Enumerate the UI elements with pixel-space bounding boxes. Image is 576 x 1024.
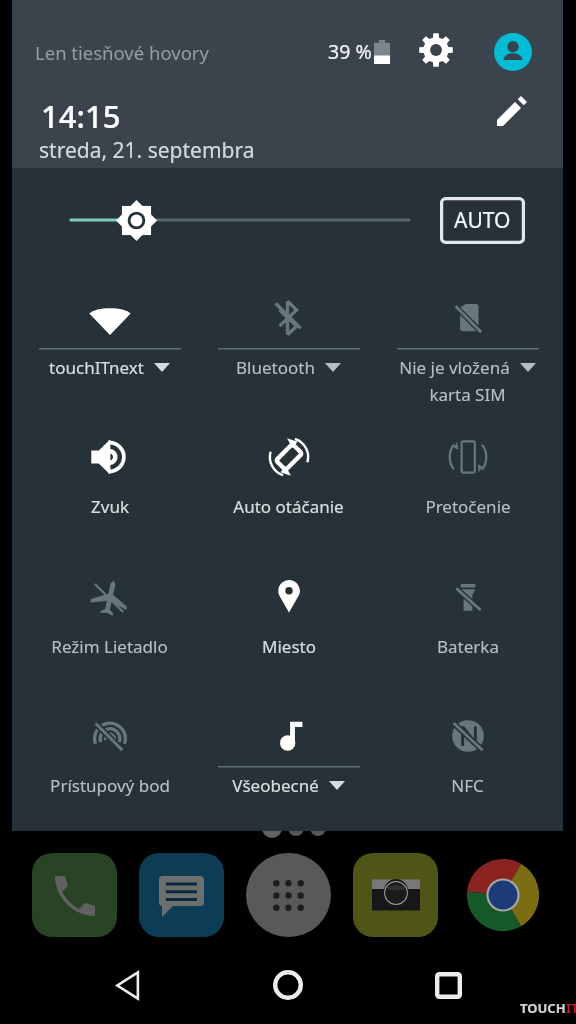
button[interactable]: Miesto [199,573,378,705]
button[interactable]: Režim Lietadlo [20,573,199,705]
staticText: NFC [451,774,484,797]
staticText: Len tiesňové hovory [35,40,209,65]
button[interactable]: User profile [485,24,541,80]
button[interactable]: Prístupový bod [20,712,199,844]
staticText: Auto otáčanie [233,495,344,518]
staticText: 14:15 [41,95,121,137]
button[interactable]: touchITnext [20,294,199,426]
staticText: 39 % [328,38,372,65]
button[interactable]: Edit tiles [484,83,540,139]
staticText: Miesto [262,635,316,658]
button[interactable]: Auto otáčanie [199,433,378,565]
button[interactable]: Messages [139,853,224,937]
staticText: Pretočenie [425,495,511,518]
staticText: Zvuk [91,495,129,518]
staticText: Baterka [437,635,499,658]
staticText: Bluetooth [236,356,315,379]
button[interactable]: Baterka [378,573,557,705]
staticText: Všeobecné [232,774,319,797]
button[interactable]: Recents [411,948,485,1022]
button[interactable]: Nie je vložená [378,294,557,426]
staticText: TOUCH [520,999,566,1017]
button[interactable]: Back [91,948,165,1022]
staticText: streda, 21. septembra [39,136,255,165]
button[interactable]: Camera [353,853,438,937]
staticText: Prístupový bod [50,774,170,797]
button[interactable]: AUTO [440,197,525,244]
staticText: touchITnext [49,356,144,379]
staticText: karta SIM [429,383,506,406]
button[interactable]: Bluetooth [199,294,378,426]
button[interactable]: Settings [408,22,464,78]
button[interactable]: Všeobecné [199,712,378,844]
staticText: Nie je vložená [399,356,510,379]
button[interactable]: Pretočenie [378,433,557,565]
button[interactable]: All apps [246,853,331,937]
button[interactable]: Zvuk [20,433,199,565]
button[interactable]: Phone [32,853,117,937]
button[interactable]: Chrome [460,853,545,937]
staticText: Režim Lietadlo [51,635,168,658]
button[interactable]: NFC [378,712,557,844]
button[interactable]: Home [251,948,325,1022]
staticText: AUTO [454,206,511,235]
staticText: IT [566,999,576,1017]
